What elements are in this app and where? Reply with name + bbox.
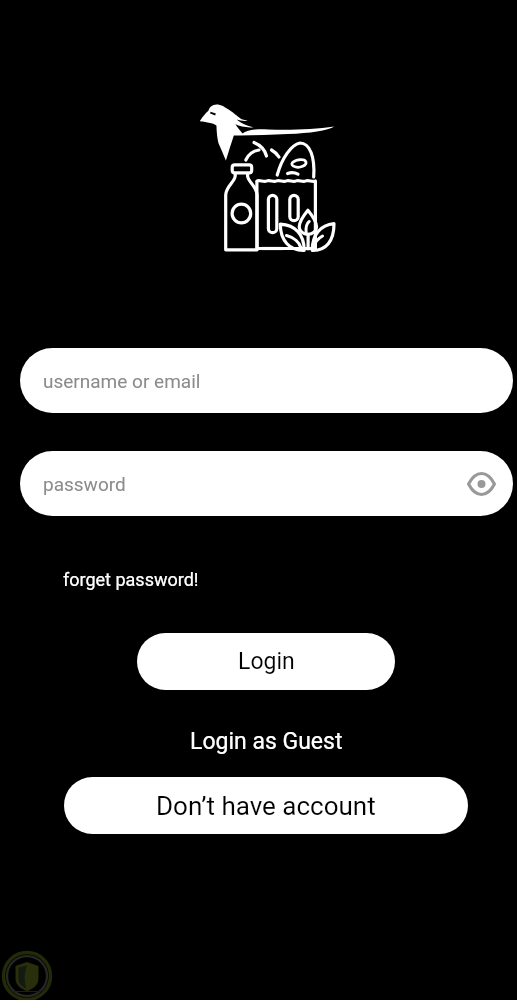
button[interactable]: Login as Guest <box>186 723 346 759</box>
staticText: Login <box>238 648 295 675</box>
button[interactable]: password <box>20 451 513 516</box>
button[interactable]: Don’t have account <box>64 777 468 834</box>
staticText: Login as Guest <box>190 728 343 755</box>
staticText: forget password! <box>63 569 199 590</box>
button[interactable]: forget password! <box>59 565 203 594</box>
button[interactable]: username or email <box>20 348 513 413</box>
staticText: username or email <box>43 370 201 392</box>
staticText: Don’t have account <box>156 791 376 821</box>
staticText: password <box>43 473 126 495</box>
button[interactable]: Show password <box>459 461 504 506</box>
button[interactable]: Login <box>137 633 395 690</box>
